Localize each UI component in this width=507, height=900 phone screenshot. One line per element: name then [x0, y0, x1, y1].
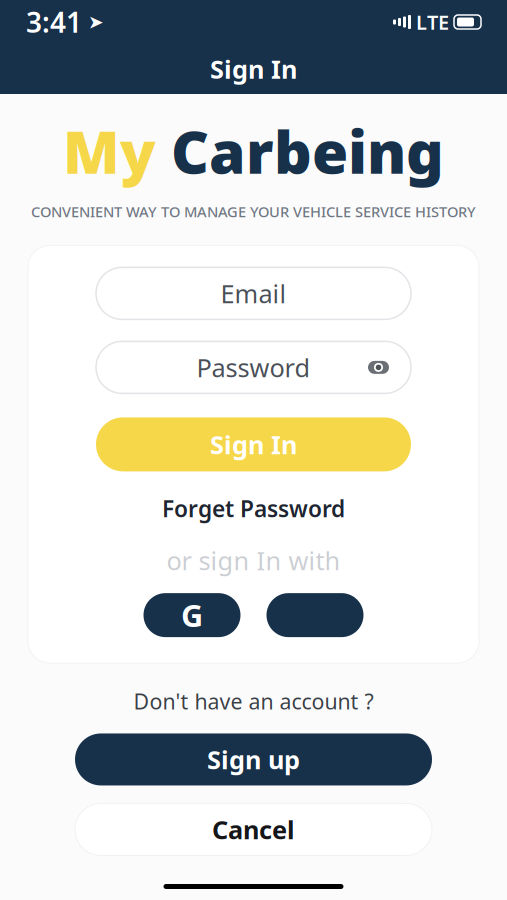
- staticText: Sign up: [207, 743, 300, 776]
- button[interactable]: Sign in with Apple: [266, 593, 363, 637]
- button[interactable]: Email: [28, 267, 479, 319]
- button[interactable]: Sign In: [96, 417, 411, 471]
- staticText: Cancel: [212, 813, 295, 846]
- staticText: Carbeing: [156, 112, 444, 190]
- staticText: LTE: [416, 9, 449, 35]
- staticText: Forget Password: [162, 493, 345, 523]
- staticText: Password: [196, 351, 310, 384]
- button[interactable]: Forget Password: [152, 487, 355, 529]
- staticText: Email: [220, 277, 286, 310]
- staticText: Sign In: [210, 52, 297, 86]
- button[interactable]: Cancel: [75, 803, 432, 855]
- staticText: CONVENIENT WAY TO MANAGE YOUR VEHICLE SE…: [31, 202, 476, 221]
- staticText: 3:41: [26, 3, 82, 41]
- staticText: G: [181, 595, 203, 635]
- staticText: Don't have an account ?: [133, 687, 373, 715]
- button[interactable]: Sign in with Google: [143, 593, 240, 637]
- button[interactable]: Password: [28, 341, 479, 393]
- button[interactable]: Sign up: [75, 733, 432, 785]
- staticText: ➤: [88, 11, 104, 33]
- staticText: Sign In: [210, 428, 297, 461]
- staticText: My: [63, 112, 156, 190]
- staticText: or sign In with: [166, 543, 340, 577]
